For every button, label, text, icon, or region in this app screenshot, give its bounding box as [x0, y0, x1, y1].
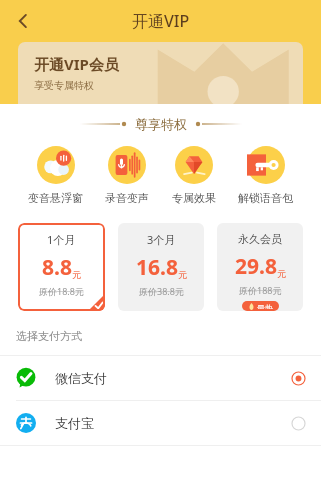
staticText: 录音变声	[105, 191, 149, 205]
staticText: 原价38.8元	[139, 285, 184, 297]
button[interactable]: Back	[6, 4, 40, 38]
staticText: 3个月	[147, 232, 176, 247]
button[interactable]: 3个月	[118, 223, 204, 311]
staticText: 支付宝	[55, 415, 94, 431]
staticText: 尊享特权	[135, 116, 187, 132]
staticText: 元	[72, 269, 81, 280]
button[interactable]: 开通VIP会员	[18, 42, 303, 104]
button[interactable]: 专属效果	[168, 146, 220, 205]
staticText: 变音悬浮窗	[28, 191, 83, 205]
staticText: 解锁语音包	[238, 191, 293, 205]
staticText: 原价188元	[239, 284, 282, 296]
staticText: 元	[178, 269, 187, 280]
staticText: 16.8	[136, 253, 178, 282]
staticText: 永久会员	[238, 232, 282, 246]
button[interactable]: 变音悬浮窗	[24, 146, 87, 205]
button[interactable]: 支付宝	[0, 401, 321, 445]
staticText: 8.8	[42, 253, 72, 282]
staticText: 开通VIP会员	[34, 54, 119, 74]
staticText: 选择支付方式	[16, 329, 82, 343]
button[interactable]: 1个月	[18, 223, 105, 311]
button[interactable]: 永久会员	[217, 223, 303, 311]
staticText: 享受专属特权	[34, 79, 94, 92]
staticText: 原价18.8元	[39, 285, 84, 297]
staticText: 元	[277, 268, 286, 279]
button[interactable]: 解锁语音包	[234, 146, 297, 205]
staticText: 开通VIP	[132, 10, 190, 32]
staticText: 微信支付	[55, 370, 107, 386]
staticText: 专属效果	[172, 191, 216, 205]
staticText: 1个月	[47, 232, 76, 247]
staticText: 最热	[257, 303, 273, 309]
button[interactable]: 微信支付	[0, 356, 321, 400]
staticText: 29.8	[235, 252, 277, 281]
button[interactable]: 录音变声	[101, 146, 153, 205]
